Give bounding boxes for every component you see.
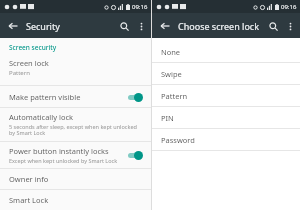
staticText: Security (26, 20, 60, 32)
staticText: PIN (161, 113, 174, 123)
button[interactable]: Owner info (0, 169, 151, 189)
button[interactable]: PIN (152, 107, 300, 128)
staticText: Make pattern visible (9, 92, 127, 102)
button[interactable]: More options (282, 18, 298, 34)
staticText: None (161, 47, 181, 57)
staticText: Choose screen lock (178, 20, 259, 32)
button[interactable]: More options (133, 18, 149, 34)
button[interactable]: Back (156, 17, 174, 35)
button[interactable]: None (152, 41, 300, 62)
staticText: Automatically lock (9, 112, 74, 122)
button[interactable]: Smart Lock (0, 190, 151, 210)
button[interactable]: Back (4, 17, 22, 35)
staticText: Except when kept unlocked by Smart Lock (9, 157, 118, 164)
staticText: 5 seconds after sleep, except when kept … (9, 123, 143, 137)
staticText: Screen security (9, 43, 57, 52)
button[interactable]: Swipe (152, 63, 300, 84)
button[interactable]: Password (152, 129, 300, 150)
staticText: Smart Lock (9, 195, 49, 205)
button[interactable]: Screen lock (0, 58, 151, 81)
button[interactable]: Make pattern visible (0, 86, 151, 107)
staticText: Pattern (9, 69, 30, 77)
staticText: 09:16 (281, 3, 297, 11)
staticText: Screen lock (9, 58, 49, 68)
button[interactable]: Automatically lock (0, 108, 151, 141)
button[interactable]: Power button instantly locks (0, 142, 151, 168)
staticText: 09:16 (132, 3, 148, 11)
staticText: Swipe (161, 69, 182, 79)
button[interactable]: Search (264, 17, 282, 35)
button[interactable]: Search (115, 17, 133, 35)
staticText: Password (161, 135, 195, 145)
staticText: Power button instantly locks (9, 146, 109, 156)
button[interactable]: Pattern (152, 85, 300, 106)
staticText: Pattern (161, 91, 188, 101)
staticText: Owner info (9, 174, 49, 184)
